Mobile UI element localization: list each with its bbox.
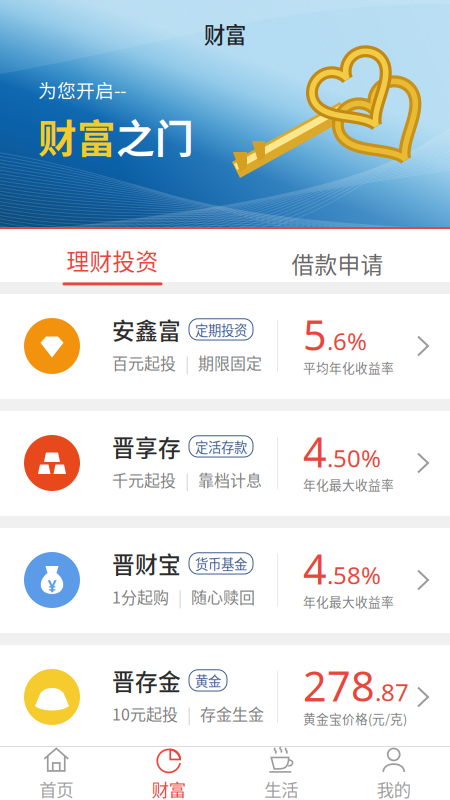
staticText: 278 <box>303 658 375 713</box>
staticText: | <box>185 351 189 374</box>
button[interactable]: 安鑫富 <box>0 294 450 399</box>
staticText: | <box>187 702 191 725</box>
staticText: 晋财宝 <box>112 547 181 580</box>
staticText: 为您开启-- <box>38 76 126 103</box>
staticText: 黄金宝价格(元/克) <box>303 709 407 727</box>
staticText: 货币基金 <box>195 554 247 573</box>
staticText: | <box>185 468 189 491</box>
staticText: ¥ <box>47 575 56 597</box>
staticText: 随心赎回 <box>191 585 255 608</box>
staticText: 年化最大收益率 <box>303 592 394 610</box>
staticText: 首页 <box>39 776 73 800</box>
staticText: 定活存款 <box>195 437 247 456</box>
button[interactable]: 晋享存 <box>0 411 450 516</box>
staticText: 之门 <box>116 108 194 164</box>
staticText: 百元起投 <box>112 351 176 374</box>
button[interactable]: ¥ <box>0 528 450 633</box>
staticText: 4 <box>303 541 327 596</box>
staticText: 财富 <box>152 776 186 800</box>
staticText: 4 <box>303 424 327 479</box>
staticText: 定期投资 <box>195 320 247 339</box>
staticText: .58% <box>327 559 381 591</box>
staticText: 我的 <box>377 776 411 800</box>
staticText: 千元起投 <box>112 468 176 491</box>
staticText: 5 <box>303 307 327 362</box>
staticText: 年化最大收益率 <box>303 475 394 493</box>
button[interactable]: 首页 <box>0 740 112 800</box>
staticText: 靠档计息 <box>198 468 262 491</box>
button[interactable]: 借款申请 <box>225 229 450 282</box>
staticText: 理财投资 <box>66 244 158 276</box>
staticText: | <box>178 585 182 608</box>
staticText: .50% <box>327 442 381 474</box>
staticText: 财富 <box>204 18 246 49</box>
staticText: 财富 <box>38 108 116 164</box>
staticText: 10元起投 <box>112 702 178 725</box>
staticText: 平均年化收益率 <box>303 358 394 376</box>
button[interactable]: 理财投资 <box>0 229 225 282</box>
staticText: 1分起购 <box>112 585 169 608</box>
staticText: 存金生金 <box>200 702 264 725</box>
button[interactable]: 我的 <box>337 740 450 800</box>
staticText: 黄金 <box>195 671 221 690</box>
button[interactable]: 生活 <box>225 740 337 800</box>
staticText: 安鑫富 <box>112 313 181 346</box>
staticText: 借款申请 <box>291 247 383 280</box>
button[interactable]: 晋存金 <box>0 645 450 750</box>
staticText: 生活 <box>264 776 298 800</box>
staticText: 期限固定 <box>198 351 262 374</box>
staticText: .87 <box>375 676 409 708</box>
staticText: 晋享存 <box>112 430 181 463</box>
button[interactable]: 财富 <box>112 740 225 800</box>
staticText: 晋存金 <box>112 664 181 697</box>
staticText: .6% <box>327 325 367 357</box>
